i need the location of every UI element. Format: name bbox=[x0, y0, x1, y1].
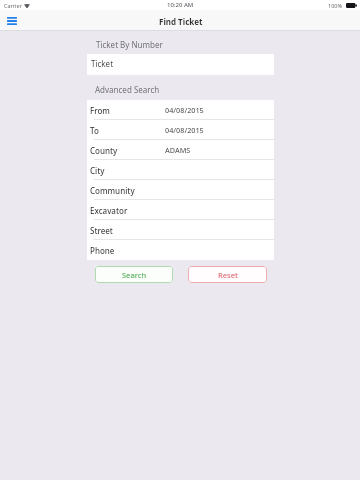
staticText: 04/08/2015 bbox=[165, 105, 204, 115]
staticText: Find Ticket bbox=[159, 16, 203, 27]
staticText: Excavator bbox=[90, 205, 128, 216]
button[interactable]: County bbox=[87, 140, 274, 160]
button[interactable]: Street bbox=[87, 220, 274, 240]
staticText: 100% bbox=[328, 2, 343, 9]
button[interactable]: Phone bbox=[87, 240, 274, 260]
staticText: To bbox=[90, 125, 99, 136]
staticText: 04/08/2015 bbox=[165, 125, 204, 135]
button[interactable]: Search bbox=[95, 266, 173, 283]
button[interactable]: Community bbox=[87, 180, 274, 200]
staticText: Ticket bbox=[91, 58, 114, 69]
staticText: ADAMS bbox=[165, 145, 191, 155]
button[interactable]: Excavator bbox=[87, 200, 274, 220]
staticText: County bbox=[90, 145, 118, 156]
staticText: Reset bbox=[218, 270, 238, 280]
staticText: Search bbox=[122, 270, 147, 280]
button[interactable]: Open navigation menu bbox=[1, 10, 22, 31]
staticText: Street bbox=[90, 225, 113, 236]
staticText: From bbox=[90, 105, 110, 116]
staticText: Advanced Search bbox=[95, 84, 160, 95]
button[interactable]: To bbox=[87, 120, 274, 140]
button[interactable]: Reset bbox=[188, 266, 267, 283]
staticText: Community bbox=[90, 185, 135, 196]
staticText: Carrier bbox=[4, 2, 22, 9]
button[interactable]: From bbox=[87, 100, 274, 120]
button[interactable]: Ticket bbox=[87, 54, 274, 75]
staticText: 10:20 AM bbox=[167, 1, 194, 9]
staticText: City bbox=[90, 165, 105, 176]
button[interactable]: City bbox=[87, 160, 274, 180]
staticText: Ticket By Number bbox=[96, 39, 163, 50]
staticText: Phone bbox=[90, 245, 115, 256]
